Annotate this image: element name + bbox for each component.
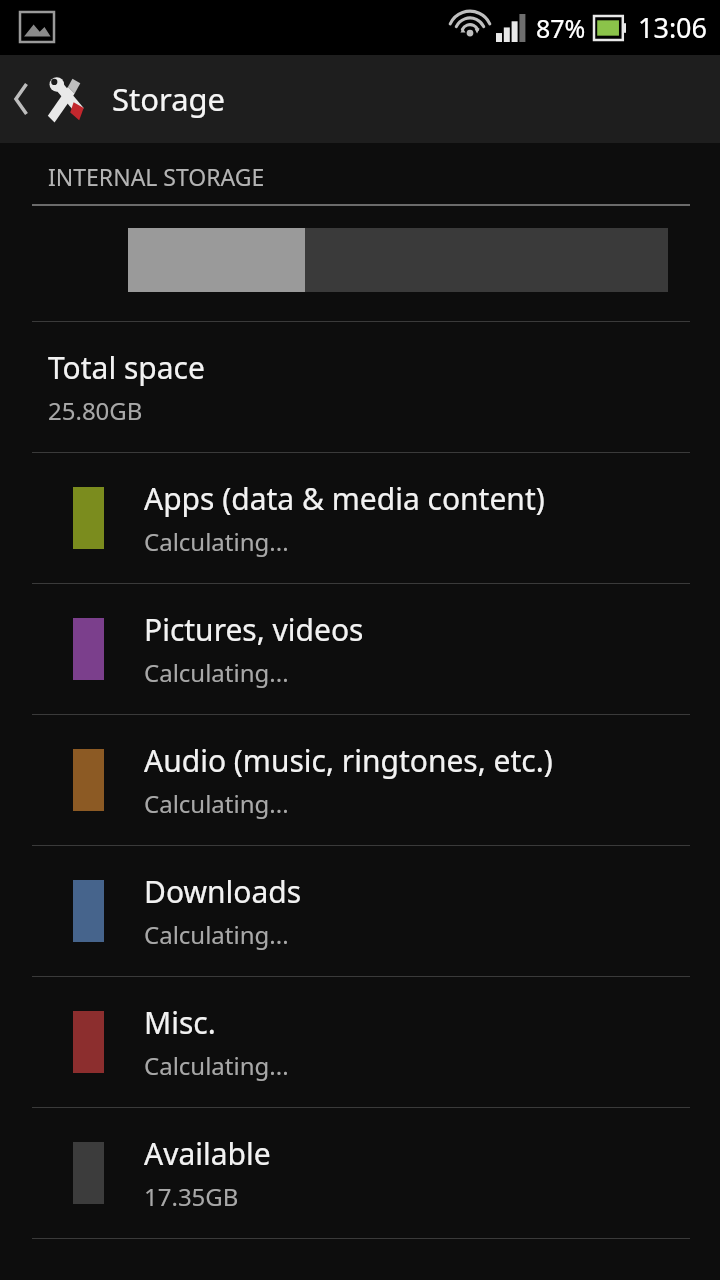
- staticText: Available: [144, 1133, 271, 1174]
- button[interactable]: Downloads: [0, 846, 720, 976]
- staticText: INTERNAL STORAGE: [48, 161, 265, 192]
- staticText: Apps (data & media content): [144, 478, 545, 519]
- staticText: Misc.: [144, 1002, 216, 1043]
- staticText: 87%: [536, 11, 586, 45]
- button[interactable]: Misc.: [0, 977, 720, 1107]
- staticText: Downloads: [144, 871, 302, 912]
- staticText: Calculating...: [144, 656, 289, 689]
- button[interactable]: Back: [0, 55, 720, 143]
- staticText: Calculating...: [144, 918, 289, 951]
- staticText: 25.80GB: [48, 394, 143, 427]
- button[interactable]: Audio (music, ringtones, etc.): [0, 715, 720, 845]
- button[interactable]: Available: [0, 1108, 720, 1238]
- staticText: 13:06: [638, 9, 708, 46]
- staticText: Calculating...: [144, 525, 289, 558]
- staticText: Calculating...: [144, 787, 289, 820]
- staticText: Storage: [112, 78, 226, 120]
- button[interactable]: Apps (data & media content): [0, 453, 720, 583]
- staticText: Audio (music, ringtones, etc.): [144, 740, 553, 781]
- staticText: Calculating...: [144, 1049, 289, 1082]
- button[interactable]: Total space: [0, 322, 720, 452]
- staticText: 17.35GB: [144, 1180, 239, 1213]
- staticText: Pictures, videos: [144, 609, 364, 650]
- staticText: Total space: [48, 347, 205, 388]
- button[interactable]: Pictures, videos: [0, 584, 720, 714]
- button[interactable]: Back: [8, 71, 36, 127]
